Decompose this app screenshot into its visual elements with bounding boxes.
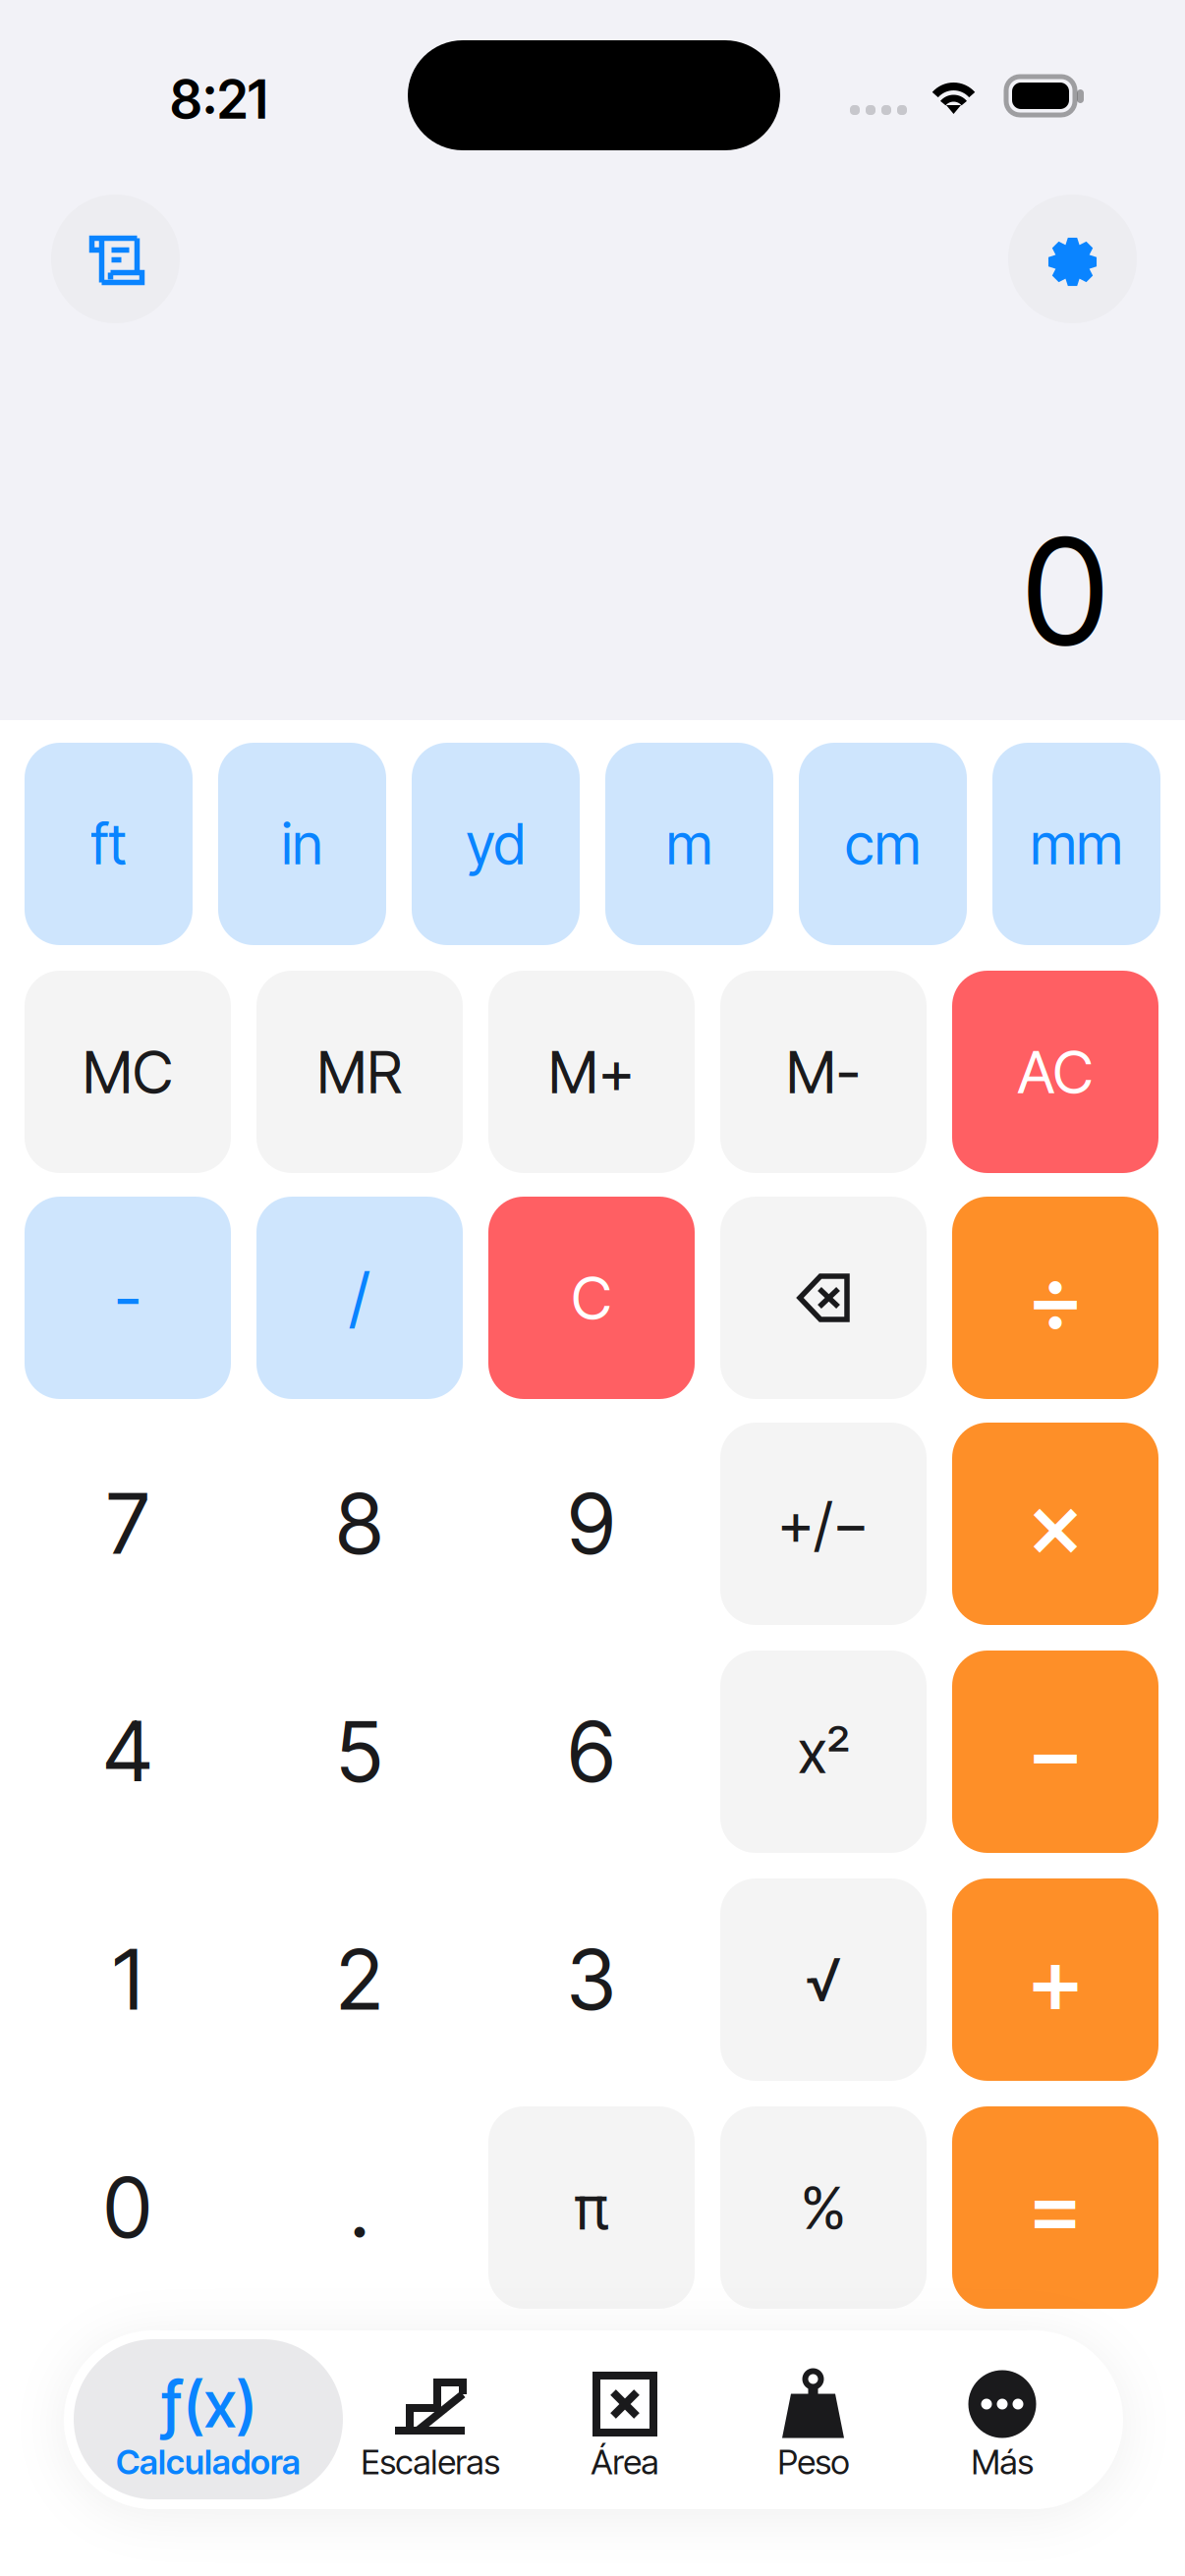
- staticText: AC: [1017, 1036, 1093, 1108]
- staticText: Escaleras: [361, 2441, 500, 2483]
- staticText: =: [1027, 2154, 1083, 2261]
- staticText: −: [1027, 1696, 1084, 1807]
- button[interactable]: Peso: [651, 2339, 976, 2499]
- button[interactable]: 7: [25, 1423, 231, 1625]
- staticText: 8:21: [170, 68, 268, 131]
- button[interactable]: M+: [488, 971, 695, 1173]
- staticText: M-: [786, 1036, 861, 1108]
- staticText: in: [282, 810, 323, 878]
- button[interactable]: −: [952, 1651, 1158, 1853]
- staticText: M+: [548, 1036, 635, 1108]
- button[interactable]: +: [952, 1878, 1158, 2081]
- staticText: 8: [336, 1474, 383, 1574]
- staticText: m: [666, 810, 712, 878]
- button[interactable]: yd: [412, 743, 580, 945]
- staticText: 0: [1023, 503, 1107, 681]
- button[interactable]: 3: [488, 1878, 695, 2081]
- staticText: C: [571, 1262, 612, 1333]
- staticText: 4: [103, 1702, 152, 1802]
- staticText: ×: [1027, 1468, 1084, 1579]
- staticText: ft: [91, 810, 126, 878]
- staticText: cm: [845, 810, 921, 878]
- staticText: 0: [104, 2158, 152, 2257]
- button[interactable]: +/−: [720, 1423, 927, 1625]
- button[interactable]: in: [218, 743, 386, 945]
- button[interactable]: mm: [992, 743, 1160, 945]
- button[interactable]: Más: [840, 2339, 1164, 2499]
- staticText: 7: [107, 1474, 149, 1574]
- staticText: 9: [568, 1474, 615, 1574]
- button[interactable]: 0: [25, 2106, 231, 2309]
- staticText: MC: [83, 1036, 173, 1108]
- button[interactable]: m: [605, 743, 773, 945]
- staticText: 2: [337, 1930, 383, 2030]
- button[interactable]: /: [256, 1197, 463, 1399]
- staticText: 1: [113, 1930, 142, 2030]
- button[interactable]: Escaleras: [268, 2339, 592, 2499]
- staticText: ÷: [1027, 1242, 1084, 1353]
- button[interactable]: %: [720, 2106, 927, 2309]
- button[interactable]: ƒ(x): [46, 2339, 370, 2499]
- staticText: π: [574, 2172, 609, 2243]
- staticText: -: [114, 1258, 141, 1338]
- button[interactable]: 4: [25, 1651, 231, 1853]
- staticText: √: [806, 1944, 841, 2015]
- staticText: +/−: [778, 1488, 869, 1559]
- staticText: mm: [1030, 810, 1123, 878]
- button[interactable]: √: [720, 1878, 927, 2081]
- staticText: +: [1027, 1924, 1084, 2035]
- staticText: MR: [317, 1036, 402, 1108]
- button[interactable]: MC: [25, 971, 231, 1173]
- staticText: /: [349, 1258, 370, 1338]
- button[interactable]: -: [25, 1197, 231, 1399]
- button[interactable]: MR: [256, 971, 463, 1173]
- button[interactable]: x²: [720, 1651, 927, 1853]
- staticText: 6: [568, 1702, 615, 1802]
- staticText: Área: [591, 2441, 659, 2483]
- button[interactable]: M-: [720, 971, 927, 1173]
- button[interactable]: .: [256, 2106, 463, 2309]
- staticText: yd: [466, 810, 525, 878]
- staticText: %: [801, 2172, 846, 2243]
- staticText: 5: [337, 1702, 383, 1802]
- button[interactable]: 1: [25, 1878, 231, 2081]
- button[interactable]: Historial: [51, 195, 180, 323]
- staticText: Calculadora: [116, 2441, 301, 2483]
- button[interactable]: 2: [256, 1878, 463, 2081]
- button[interactable]: cm: [799, 743, 967, 945]
- button[interactable]: 9: [488, 1423, 695, 1625]
- staticText: Peso: [778, 2441, 849, 2483]
- button[interactable]: Área: [463, 2339, 787, 2499]
- button[interactable]: 6: [488, 1651, 695, 1853]
- button[interactable]: 8: [256, 1423, 463, 1625]
- button[interactable]: C: [488, 1197, 695, 1399]
- staticText: .: [350, 2158, 369, 2257]
- button[interactable]: π: [488, 2106, 695, 2309]
- button[interactable]: ÷: [952, 1197, 1158, 1399]
- button[interactable]: ×: [952, 1423, 1158, 1625]
- button[interactable]: 5: [256, 1651, 463, 1853]
- staticText: x²: [798, 1716, 849, 1787]
- button[interactable]: ft: [25, 743, 193, 945]
- staticText: Más: [971, 2441, 1033, 2483]
- staticText: ƒ(x): [160, 2365, 257, 2443]
- button[interactable]: Borrar: [720, 1197, 927, 1399]
- button[interactable]: =: [952, 2106, 1158, 2309]
- button[interactable]: Ajustes: [1008, 195, 1137, 323]
- staticText: 3: [567, 1930, 616, 2030]
- button[interactable]: AC: [952, 971, 1158, 1173]
